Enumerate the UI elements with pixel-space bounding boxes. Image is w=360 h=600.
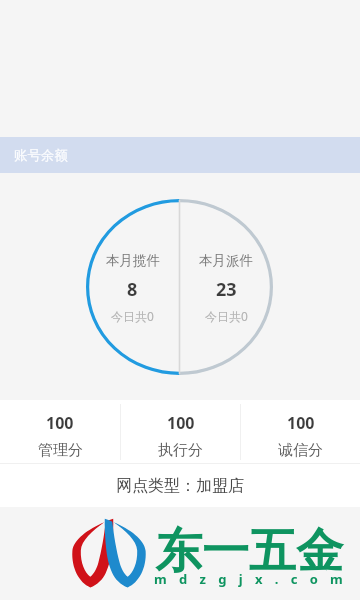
button[interactable]: 100 (241, 400, 360, 463)
staticText: 本月揽件 (106, 252, 160, 269)
button[interactable]: 100 (121, 400, 240, 463)
staticText: 东一五金 (155, 522, 343, 581)
staticText: mdzgjx.com (154, 570, 356, 588)
staticText: 账号余额 (14, 147, 68, 164)
staticText: 今日共0 (111, 308, 154, 324)
button[interactable]: 100 (0, 400, 120, 463)
button[interactable]: 网点类型：加盟店 (0, 464, 360, 507)
staticText: 管理分 (38, 441, 83, 460)
staticText: 100 (167, 412, 195, 434)
staticText: 本月派件 (199, 252, 253, 269)
staticText: 诚信分 (278, 441, 323, 460)
staticText: 今日共0 (205, 308, 248, 324)
staticText: 23 (216, 277, 237, 302)
staticText: 100 (46, 412, 74, 434)
staticText: 执行分 (158, 441, 203, 460)
staticText: 8 (127, 277, 138, 302)
staticText: 网点类型：加盟店 (116, 476, 244, 496)
staticText: 100 (287, 412, 315, 434)
button[interactable]: 账号余额 (0, 137, 360, 173)
